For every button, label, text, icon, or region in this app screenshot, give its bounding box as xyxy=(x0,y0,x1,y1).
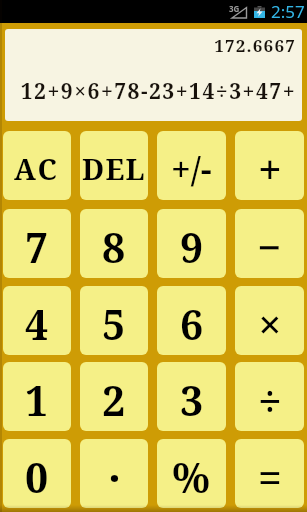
staticText: 2 xyxy=(102,372,126,428)
button[interactable]: % xyxy=(157,439,226,508)
staticText: 5 xyxy=(102,296,126,352)
staticText: + xyxy=(258,140,282,197)
button[interactable]: ÷ xyxy=(235,362,304,431)
button[interactable]: + xyxy=(235,131,304,200)
staticText: 6 xyxy=(180,296,204,352)
staticText: 2:57 xyxy=(271,0,305,23)
button[interactable]: 7 xyxy=(3,209,71,278)
button[interactable]: AC xyxy=(3,131,71,200)
button[interactable]: × xyxy=(235,286,304,355)
staticText: 4 xyxy=(25,296,49,352)
button[interactable]: − xyxy=(235,209,304,278)
button[interactable]: 5 xyxy=(80,286,148,355)
staticText: 3 xyxy=(180,372,204,428)
button[interactable]: +/- xyxy=(157,131,226,200)
button[interactable]: DEL xyxy=(80,131,148,200)
button[interactable]: 3 xyxy=(157,362,226,431)
staticText: 12+9×6+78-23+14÷3+47+ xyxy=(11,77,296,106)
staticText: 1 xyxy=(25,372,49,428)
button[interactable]: 8 xyxy=(80,209,148,278)
button[interactable]: 6 xyxy=(157,286,226,355)
staticText: % xyxy=(172,448,211,505)
button[interactable]: 4 xyxy=(3,286,71,355)
staticText: · xyxy=(108,447,121,507)
staticText: AC xyxy=(14,149,60,188)
staticText: × xyxy=(258,295,282,352)
staticText: +/- xyxy=(171,145,212,193)
staticText: − xyxy=(257,218,282,275)
staticText: DEL xyxy=(82,149,146,188)
staticText: 3G xyxy=(229,3,240,14)
button[interactable]: = xyxy=(235,439,304,508)
staticText: 7 xyxy=(25,219,49,275)
staticText: ÷ xyxy=(258,371,282,428)
staticText: 172.6667 xyxy=(11,34,296,57)
button[interactable]: 0 xyxy=(3,439,71,508)
button[interactable]: · xyxy=(80,439,148,508)
staticText: 9 xyxy=(180,219,204,275)
button[interactable]: 2 xyxy=(80,362,148,431)
button[interactable]: 1 xyxy=(3,362,71,431)
staticText: 8 xyxy=(102,219,126,275)
staticText: = xyxy=(258,448,282,505)
staticText: 0 xyxy=(25,449,49,505)
button[interactable]: 9 xyxy=(157,209,226,278)
